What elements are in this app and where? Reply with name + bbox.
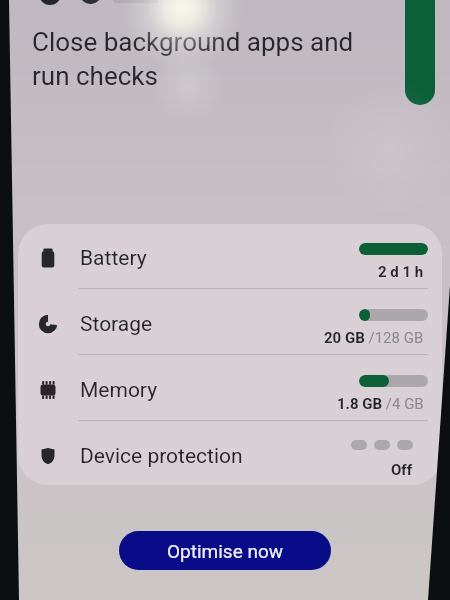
button[interactable]: Optimise now [119,531,331,570]
staticText: Close background apps and run checks [32,27,354,91]
button[interactable]: Device protection [20,423,430,489]
staticText: Optimise now [167,540,284,562]
staticText: 1.8 GB /4 GB [337,395,424,413]
staticText: Storage [80,312,153,337]
button[interactable]: Battery [20,225,430,291]
staticText: 2 d 1 h [378,263,424,281]
button[interactable]: Memory [20,357,430,423]
staticText: Memory [80,378,158,403]
staticText: Device protection [80,444,243,469]
button[interactable]: Storage [20,291,430,357]
staticText: Off [391,461,413,479]
staticText: Battery [80,246,147,271]
staticText: 20 GB /128 GB [324,329,424,347]
